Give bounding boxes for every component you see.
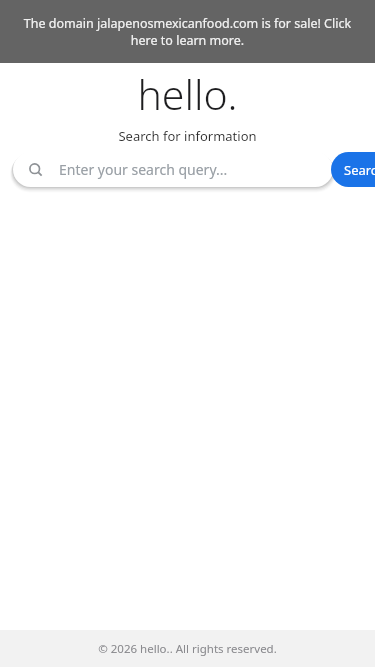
staticText: Enter your search query...	[59, 160, 228, 179]
other: Search	[28, 162, 44, 178]
staticText: Search	[344, 161, 375, 179]
staticText: © 2026 hello.. All rights reserved.	[98, 641, 277, 657]
button[interactable]: Search	[13, 152, 333, 187]
button[interactable]: Search	[331, 152, 375, 187]
button[interactable]: The domain jalapenosmexicanfood.com is f…	[0, 0, 375, 63]
staticText: The domain jalapenosmexicanfood.com is f…	[10, 15, 365, 48]
staticText: Search for information	[118, 127, 257, 145]
staticText: hello.	[137, 66, 238, 122]
